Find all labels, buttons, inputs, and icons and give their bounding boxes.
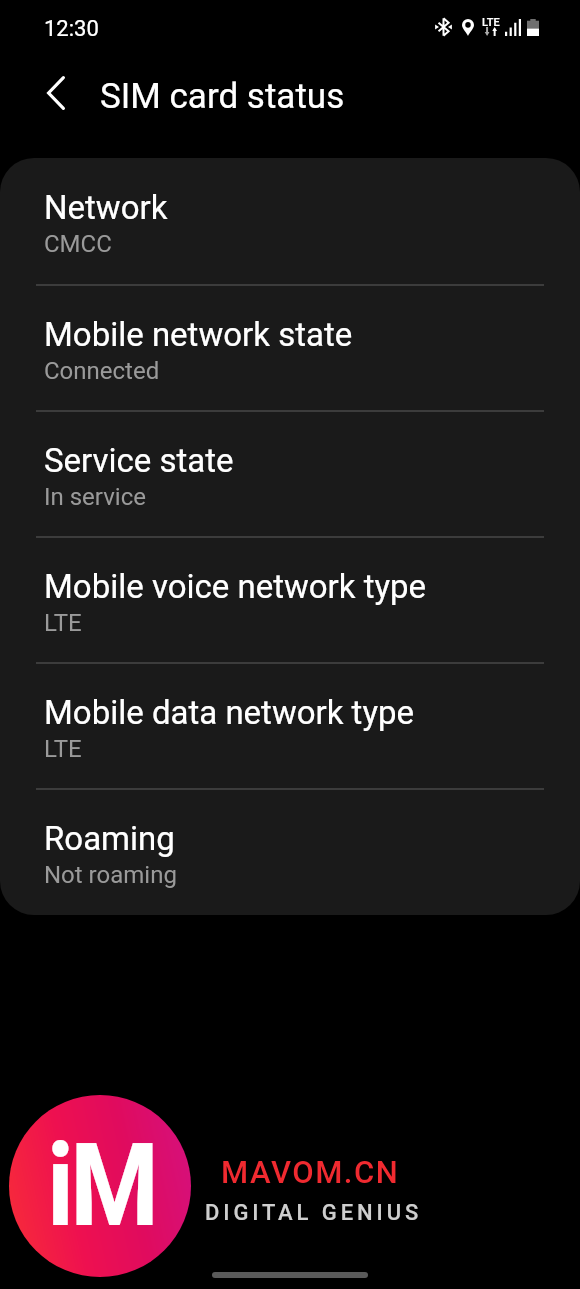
- staticText: SIM card status: [100, 76, 345, 117]
- button[interactable]: Network: [0, 158, 580, 285]
- button[interactable]: Mobile voice network type: [0, 537, 580, 663]
- staticText: Network: [44, 188, 168, 227]
- staticText: LTE: [44, 609, 82, 637]
- button[interactable]: Mobile network state: [0, 285, 580, 411]
- staticText: In service: [44, 483, 146, 511]
- button[interactable]: Mobile data network type: [0, 663, 580, 789]
- staticText: MAVOM.CN: [221, 1154, 400, 1190]
- staticText: Roaming: [44, 819, 175, 858]
- staticText: 12:30: [44, 16, 99, 42]
- staticText: Mobile data network type: [44, 693, 415, 732]
- button[interactable]: Roaming: [0, 789, 580, 915]
- staticText: Connected: [44, 357, 160, 385]
- staticText: DIGITAL GENIUS: [205, 1200, 423, 1226]
- button[interactable]: Back: [33, 70, 79, 116]
- staticText: CMCC: [44, 230, 112, 258]
- button[interactable]: Service state: [0, 411, 580, 537]
- staticText: Mobile voice network type: [44, 567, 427, 606]
- staticText: Service state: [44, 441, 234, 480]
- staticText: Mobile network state: [44, 315, 353, 354]
- staticText: LTE: [44, 735, 82, 763]
- staticText: iM: [47, 1118, 156, 1253]
- staticText: Not roaming: [44, 861, 177, 889]
- staticText: LTE: [482, 16, 500, 29]
